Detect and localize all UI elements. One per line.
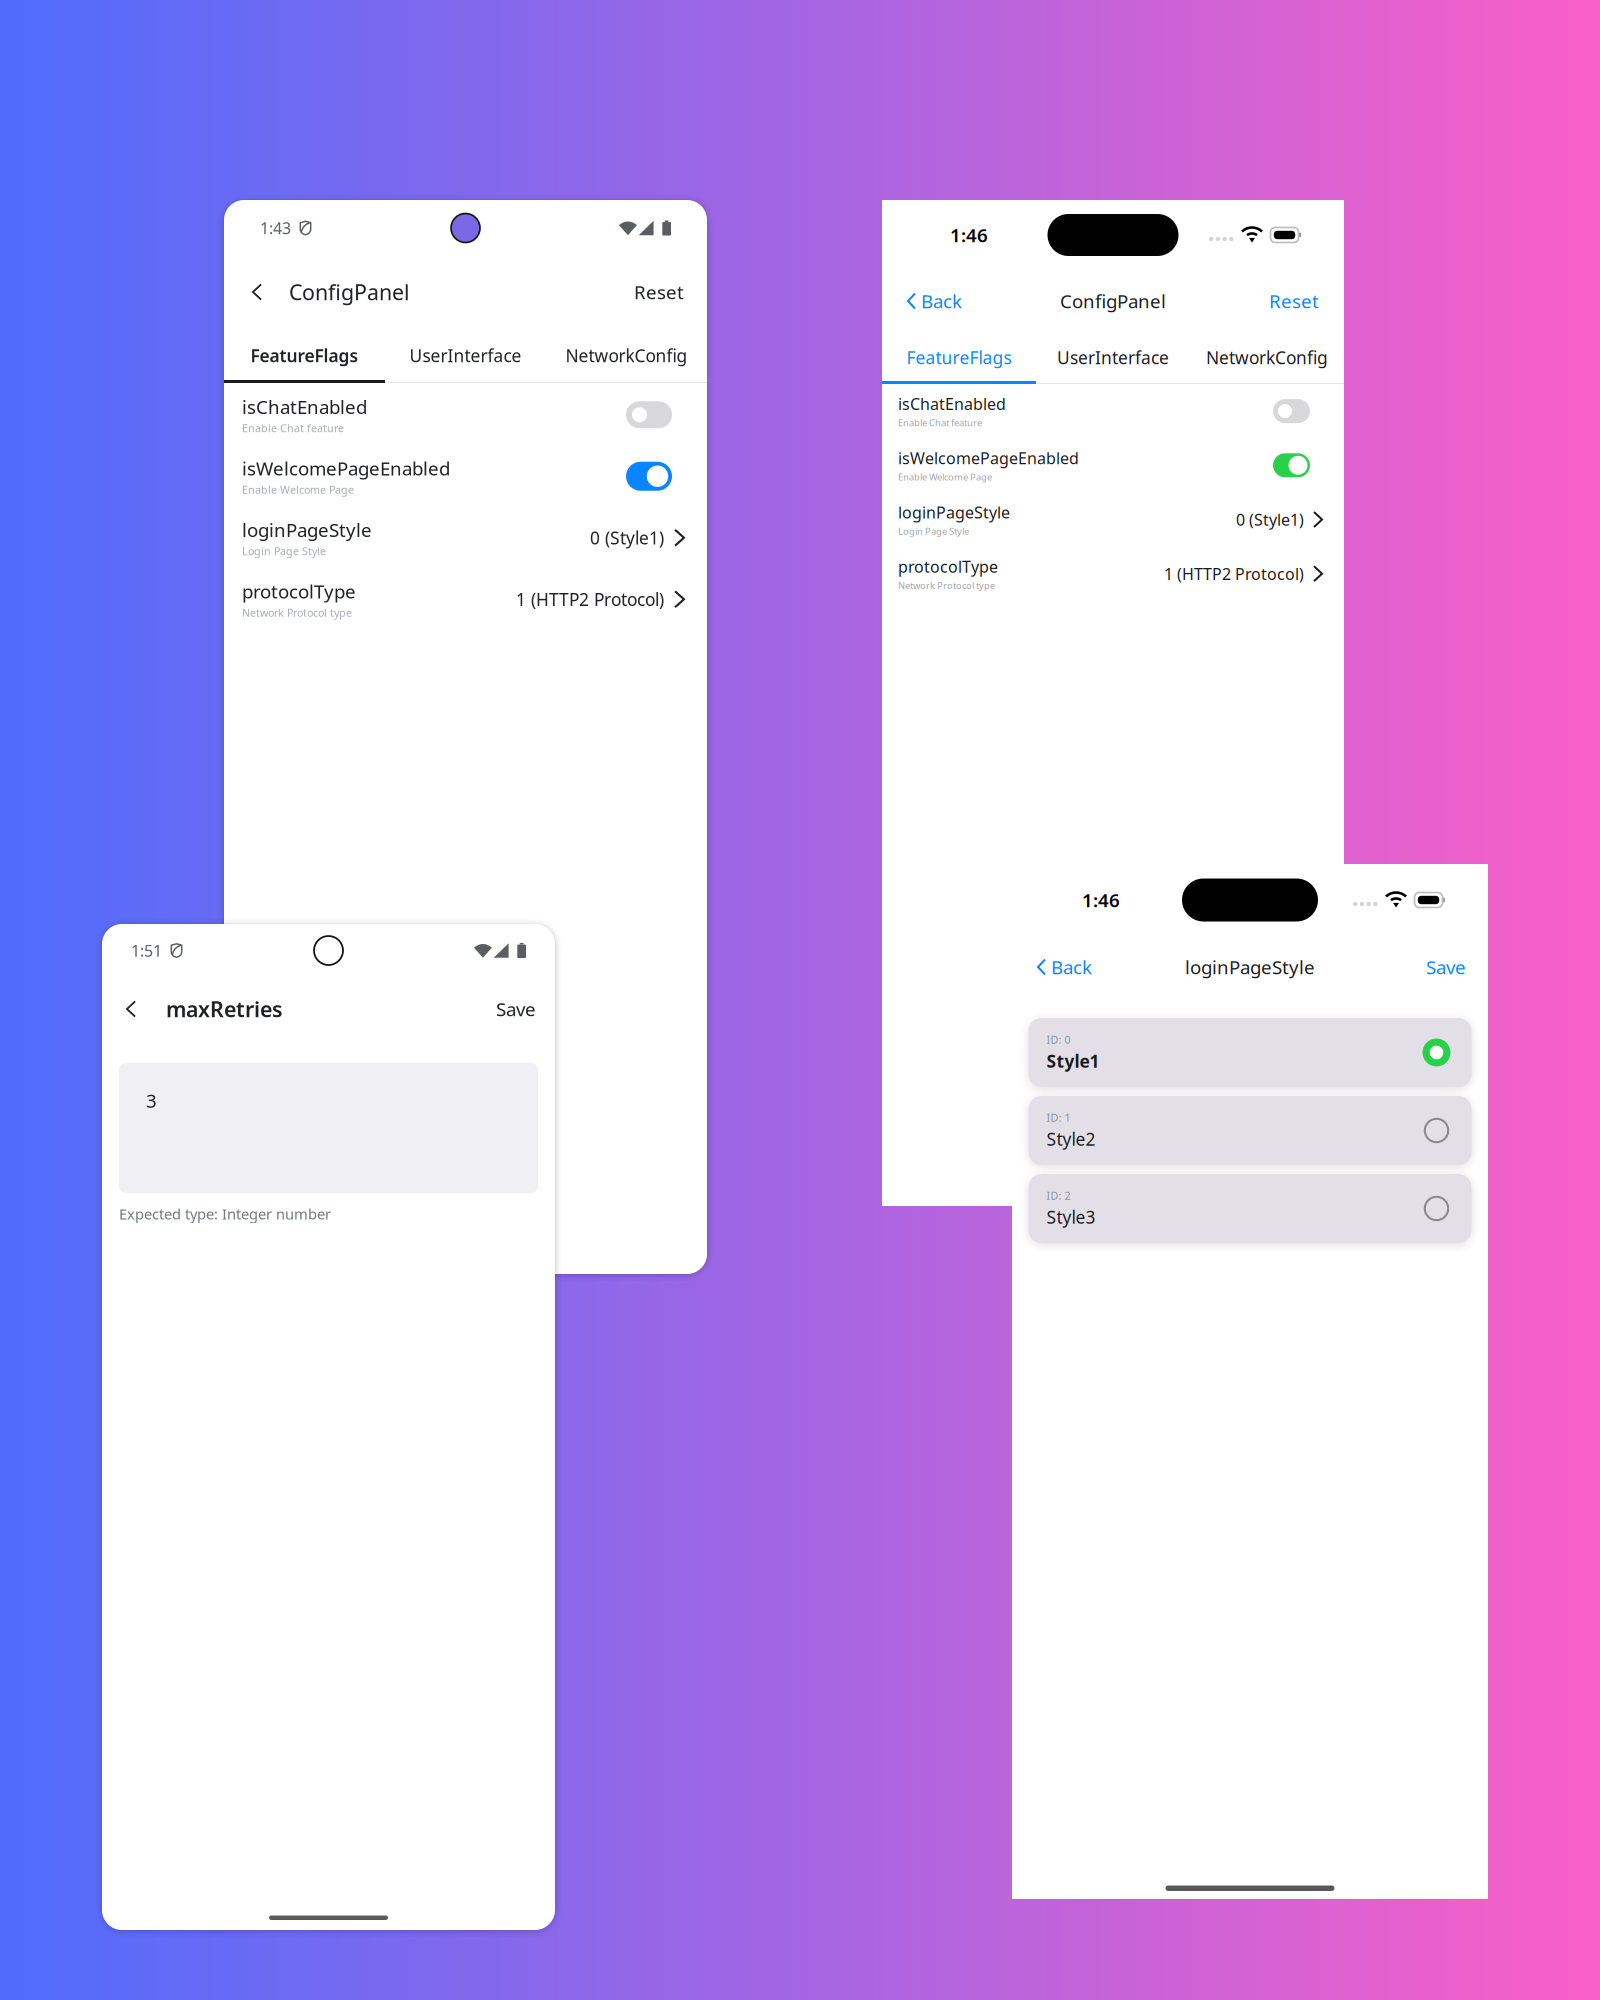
button[interactable]: loginPageStyle <box>882 492 1344 547</box>
staticText: FeatureFlags <box>906 346 1011 369</box>
staticText: UserInterface <box>1057 346 1169 369</box>
button[interactable]: ID: 1 <box>1028 1096 1471 1165</box>
staticText: Enable Chat feature <box>898 416 982 429</box>
staticText: UserInterface <box>409 344 521 367</box>
button[interactable]: protocolType <box>882 547 1344 601</box>
button[interactable]: loginPageStyle <box>224 507 707 568</box>
button[interactable]: Back <box>241 270 273 313</box>
staticText: Network Protocol type <box>242 606 352 620</box>
button[interactable]: ID: 0 <box>1028 1018 1471 1087</box>
staticText: ConfigPanel <box>289 278 410 306</box>
button[interactable]: Back <box>115 987 147 1030</box>
staticText: protocolType <box>898 556 998 577</box>
button[interactable]: Reset <box>1269 281 1319 321</box>
button[interactable]: FeatureFlags <box>882 332 1036 383</box>
staticText: NetworkConfig <box>1206 346 1328 369</box>
staticText: isWelcomePageEnabled <box>242 456 450 481</box>
staticText: Style1 <box>1046 1050 1099 1073</box>
staticText: Reset <box>634 280 684 304</box>
staticText: 1:51 <box>131 940 162 961</box>
staticText: Enable Chat feature <box>242 421 344 435</box>
staticText: Expected type: Integer number <box>119 1204 331 1223</box>
staticText: Reset <box>1269 289 1319 313</box>
staticText: NetworkConfig <box>565 344 687 367</box>
staticText: isChatEnabled <box>242 394 367 419</box>
staticText: 1:43 <box>260 217 291 239</box>
button[interactable]: ID: 2 <box>1028 1174 1471 1243</box>
staticText: Style2 <box>1046 1128 1095 1151</box>
staticText: loginPageStyle <box>242 517 372 542</box>
staticText: loginPageStyle <box>1185 955 1315 979</box>
staticText: ID: 0 <box>1046 1032 1070 1047</box>
button[interactable]: Back <box>907 281 962 321</box>
button[interactable]: FeatureFlags <box>224 329 385 382</box>
staticText: maxRetries <box>166 995 283 1023</box>
staticText: 0 (Style1) <box>1236 509 1304 530</box>
staticText: loginPageStyle <box>898 502 1010 523</box>
staticText: Enable Welcome Page <box>242 483 354 497</box>
staticText: 1 (HTTP2 Protocol) <box>1164 563 1304 584</box>
staticText: FeatureFlags <box>250 344 358 367</box>
staticText: isChatEnabled <box>898 393 1006 414</box>
staticText: ID: 2 <box>1046 1188 1070 1203</box>
staticText: isWelcomePageEnabled <box>898 447 1079 469</box>
staticText: Network Protocol type <box>898 579 995 591</box>
staticText: Enable Welcome Page <box>898 471 992 483</box>
button[interactable]: isWelcomePageEnabled <box>882 438 1344 492</box>
staticText: protocolType <box>242 579 356 604</box>
button[interactable]: NetworkConfig <box>546 329 707 382</box>
staticText: Back <box>1051 955 1092 979</box>
button[interactable]: UserInterface <box>385 329 546 382</box>
button[interactable]: isWelcomePageEnabled <box>224 445 707 507</box>
staticText: Back <box>921 289 962 313</box>
button[interactable]: Save <box>490 988 542 1030</box>
staticText: 3 <box>146 1088 157 1113</box>
staticText: 0 (Style1) <box>590 526 664 549</box>
staticText: Save <box>496 997 536 1021</box>
staticText: Save <box>1426 955 1466 979</box>
button[interactable]: Back <box>1037 947 1092 987</box>
button[interactable]: UserInterface <box>1036 332 1190 383</box>
staticText: 1:46 <box>950 223 988 247</box>
staticText: ID: 1 <box>1046 1110 1070 1125</box>
staticText: Login Page Style <box>242 544 326 558</box>
staticText: Style3 <box>1046 1206 1095 1229</box>
staticText: ConfigPanel <box>1060 289 1166 313</box>
staticText: Login Page Style <box>898 525 969 537</box>
button[interactable]: NetworkConfig <box>1190 332 1344 383</box>
staticText: 1 (HTTP2 Protocol) <box>516 588 664 611</box>
button[interactable]: protocolType <box>224 568 707 630</box>
button[interactable]: Save <box>1426 947 1466 987</box>
button[interactable]: isChatEnabled <box>882 384 1344 438</box>
staticText: 1:46 <box>1082 888 1120 912</box>
button[interactable]: isChatEnabled <box>224 384 707 445</box>
button[interactable]: Reset <box>628 271 690 313</box>
